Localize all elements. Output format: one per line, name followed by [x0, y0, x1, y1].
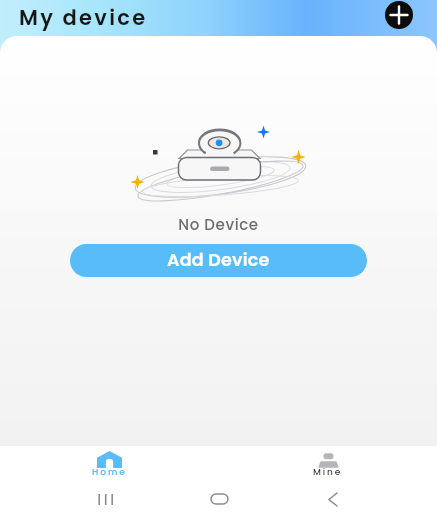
staticText: Mine	[313, 466, 343, 479]
staticText: Add Device	[167, 248, 270, 273]
staticText: Home	[92, 466, 127, 479]
button[interactable]: Home	[74, 451, 145, 483]
staticText: My device	[19, 3, 148, 32]
staticText: No Device	[0, 214, 437, 235]
button[interactable]: Add device	[385, 1, 413, 29]
button[interactable]: Back	[323, 489, 343, 509]
button[interactable]: Mine	[295, 451, 361, 483]
button[interactable]: Add Device	[70, 244, 367, 277]
button[interactable]: Home	[209, 489, 229, 509]
button[interactable]: Recent apps	[95, 489, 115, 509]
